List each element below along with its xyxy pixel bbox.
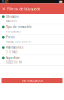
staticText: ▮▮▮ <box>59 0 62 3</box>
staticText: VER RESULTADOS <box>21 79 42 82</box>
staticText: HASTA 300.000 € <box>6 40 31 44</box>
staticText: VIVIENDAS <box>6 30 20 33</box>
button[interactable]: Habitaciones <box>0 45 64 55</box>
button[interactable]: Tipo de inmueble <box>0 24 64 35</box>
staticText: × <box>2 5 5 12</box>
button[interactable]: Precio <box>0 35 64 45</box>
staticText: Tipo de inmueble <box>6 25 32 29</box>
staticText: Precio <box>6 35 15 39</box>
staticText: Superficie <box>6 56 20 60</box>
staticText: Filtros de búsqueda <box>7 6 40 11</box>
staticText: MADRID <box>6 19 17 23</box>
staticText: 3 O MÁS <box>6 50 17 54</box>
staticText: 9:41 <box>2 0 9 3</box>
staticText: Habitaciones <box>6 46 23 49</box>
button[interactable]: Superficie <box>0 55 64 65</box>
button[interactable]: Ubicación <box>0 14 64 24</box>
staticText: Ubicación <box>6 15 19 18</box>
staticText: DESDE 80 M² <box>6 61 22 64</box>
button[interactable]: VER RESULTADOS <box>1 78 62 83</box>
button[interactable]: Close <box>1 3 6 14</box>
